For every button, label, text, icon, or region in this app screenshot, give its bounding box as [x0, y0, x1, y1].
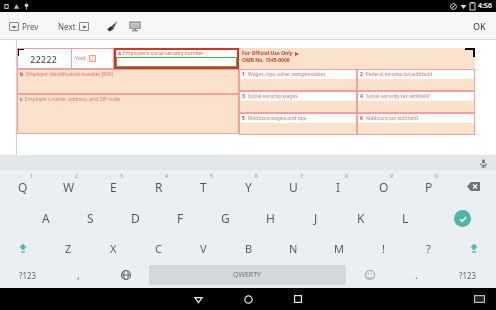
button[interactable]: Clear — [102, 16, 122, 36]
staticText: F — [177, 210, 184, 226]
staticText: H — [266, 210, 275, 226]
staticText: W — [63, 179, 75, 195]
button[interactable]: OK — [463, 15, 496, 37]
staticText: 1 — [30, 173, 33, 180]
staticText: Employer's name, address, and ZIP code — [25, 96, 120, 103]
button[interactable]: Voice input — [476, 156, 490, 170]
staticText: Void — [75, 55, 86, 62]
staticText: 3 — [242, 93, 245, 100]
button[interactable]: 2 — [46, 170, 91, 202]
button[interactable]: Void checkbox — [89, 55, 96, 62]
button[interactable]: Keyboard — [125, 16, 145, 36]
staticText: 4 — [360, 93, 363, 100]
button[interactable]: Z — [46, 234, 91, 262]
staticText: Medicare tax withheld — [366, 115, 418, 122]
staticText: L — [402, 210, 409, 226]
button[interactable]: M — [316, 234, 361, 262]
staticText: 5 — [210, 173, 213, 180]
staticText: ?123 — [459, 270, 477, 281]
staticText: 6 — [255, 173, 258, 180]
staticText: OK — [473, 20, 486, 32]
button[interactable]: Emoji — [346, 262, 393, 288]
button[interactable]: ?123 — [440, 262, 496, 288]
staticText: c — [20, 96, 23, 103]
button[interactable]: 5 — [181, 170, 226, 202]
staticText: Z — [65, 241, 72, 256]
button[interactable]: QWERTY — [149, 265, 346, 285]
staticText: Social security tax withheld — [366, 93, 430, 100]
staticText: Employee's social security number — [123, 50, 204, 57]
button[interactable]: G — [203, 202, 248, 234]
button[interactable]: Shift — [451, 234, 496, 262]
button[interactable]: Prev — [6, 18, 42, 35]
button[interactable]: X — [91, 234, 136, 262]
staticText: 7 — [300, 173, 303, 180]
button[interactable]: Change language — [102, 262, 149, 288]
button[interactable]: Home — [235, 288, 261, 310]
staticText: b — [20, 71, 24, 78]
button[interactable]: ! — [361, 234, 406, 262]
staticText: B — [245, 241, 253, 256]
button[interactable]: , — [55, 262, 102, 288]
staticText: Y — [245, 179, 252, 195]
staticText: Social security wages — [248, 93, 298, 100]
staticText: Next — [58, 21, 76, 32]
staticText: Wages, tips, other compensation — [248, 71, 326, 78]
button[interactable]: 0 — [406, 170, 451, 202]
staticText: Employer identification number (EIN) — [26, 71, 113, 78]
staticText: K — [357, 210, 365, 226]
staticText: V — [200, 241, 207, 256]
button[interactable]: . — [393, 262, 440, 288]
button[interactable]: Recent apps — [285, 288, 311, 310]
staticText: 6 — [360, 115, 363, 122]
button[interactable]: C — [136, 234, 181, 262]
button[interactable]: 3 — [91, 170, 136, 202]
staticText: ?123 — [19, 270, 37, 281]
button[interactable]: Enter — [428, 202, 496, 234]
staticText: M — [334, 241, 344, 256]
button[interactable]: 6 — [226, 170, 271, 202]
button[interactable]: S — [68, 202, 113, 234]
staticText: Medicare wages and tips — [248, 115, 307, 122]
button[interactable]: 1 — [0, 170, 46, 202]
staticText: X — [110, 241, 117, 256]
button[interactable]: F — [158, 202, 203, 234]
staticText: T — [200, 179, 207, 195]
staticText: P — [425, 179, 433, 195]
staticText: G — [221, 210, 230, 226]
button[interactable]: a — [114, 48, 239, 69]
button[interactable]: N — [271, 234, 316, 262]
button[interactable]: B — [226, 234, 271, 262]
staticText: J — [314, 210, 318, 226]
staticText: 2 — [360, 71, 363, 78]
button[interactable]: J — [293, 202, 338, 234]
staticText: , — [77, 268, 80, 282]
staticText: 2 — [75, 173, 78, 180]
button[interactable]: H — [248, 202, 293, 234]
staticText: 9 — [390, 173, 393, 180]
button[interactable]: Next — [55, 18, 92, 35]
button[interactable]: 7 — [271, 170, 316, 202]
button[interactable]: Shift — [0, 234, 46, 262]
staticText: OMB No. 1545-0008 — [242, 57, 290, 64]
button[interactable]: A — [23, 202, 68, 234]
button[interactable]: Back — [185, 288, 211, 310]
button[interactable]: L — [383, 202, 428, 234]
staticText: Federal income tax withheld — [366, 71, 433, 78]
staticText: ! — [382, 241, 385, 256]
button[interactable]: ? — [406, 234, 451, 262]
staticText: O — [379, 179, 389, 195]
button[interactable]: ?123 — [0, 262, 55, 288]
button[interactable]: 9 — [361, 170, 406, 202]
button[interactable]: Switch keyboard — [470, 290, 488, 308]
button[interactable]: 8 — [316, 170, 361, 202]
button[interactable]: 4 — [136, 170, 181, 202]
staticText: QWERTY — [233, 270, 262, 280]
button[interactable]: Backspace — [451, 170, 496, 202]
button[interactable]: K — [338, 202, 383, 234]
staticText: D — [131, 210, 140, 226]
staticText: ? — [426, 241, 431, 256]
button[interactable]: D — [113, 202, 158, 234]
button[interactable]: V — [181, 234, 226, 262]
staticText: 4 — [165, 173, 168, 180]
